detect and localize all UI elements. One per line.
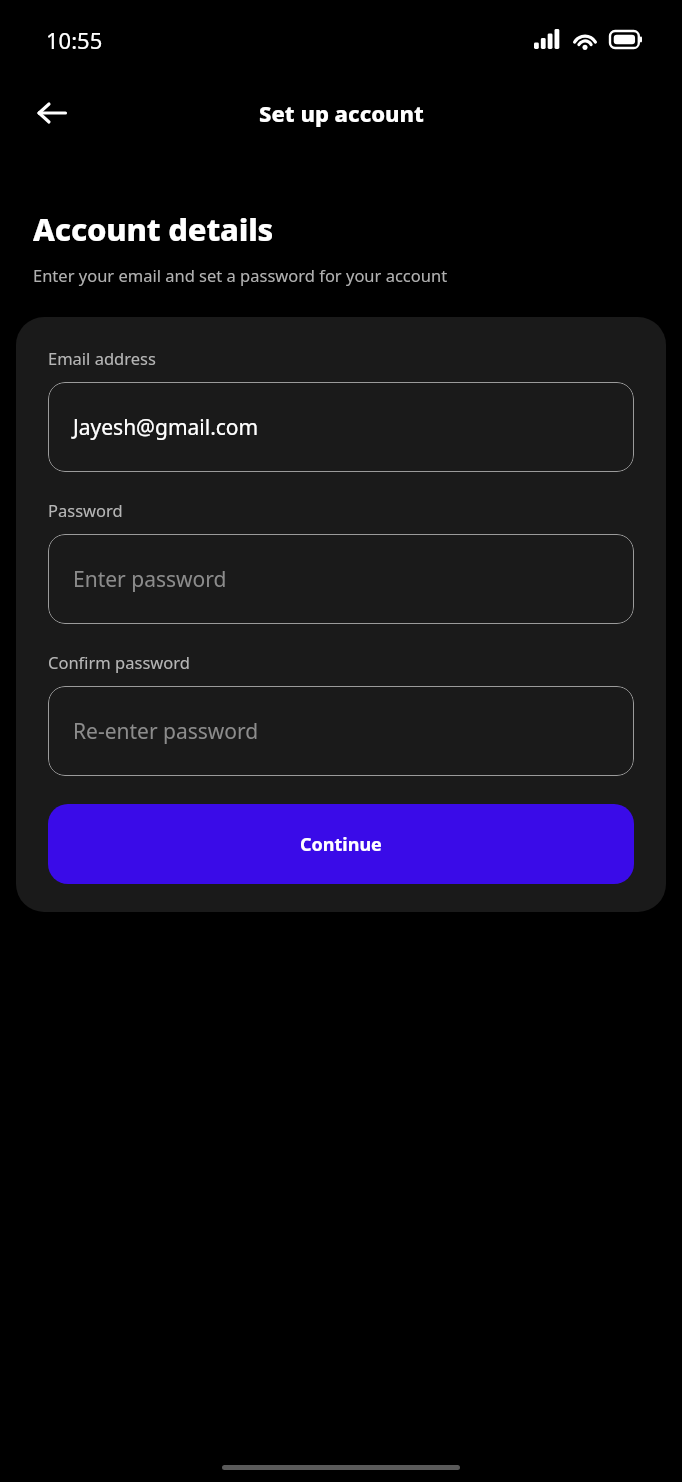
staticText: Set up account [259, 98, 424, 128]
button[interactable]: Re-enter password [48, 686, 634, 776]
staticText: Email address [48, 347, 156, 369]
staticText: Password [48, 499, 123, 521]
button[interactable]: Back [26, 87, 78, 139]
button[interactable]: Enter password [48, 534, 634, 624]
button[interactable]: Jayesh@gmail.com [48, 382, 634, 472]
staticText: Jayesh@gmail.com [73, 413, 259, 442]
staticText: Re-enter password [73, 717, 259, 746]
staticText: Enter password [73, 565, 227, 594]
staticText: Confirm password [48, 651, 190, 673]
staticText: Continue [300, 832, 382, 857]
staticText: 10:55 [46, 25, 103, 55]
button[interactable]: Continue [48, 804, 634, 884]
staticText: Enter your email and set a password for … [33, 264, 448, 286]
staticText: Account details [33, 208, 274, 250]
